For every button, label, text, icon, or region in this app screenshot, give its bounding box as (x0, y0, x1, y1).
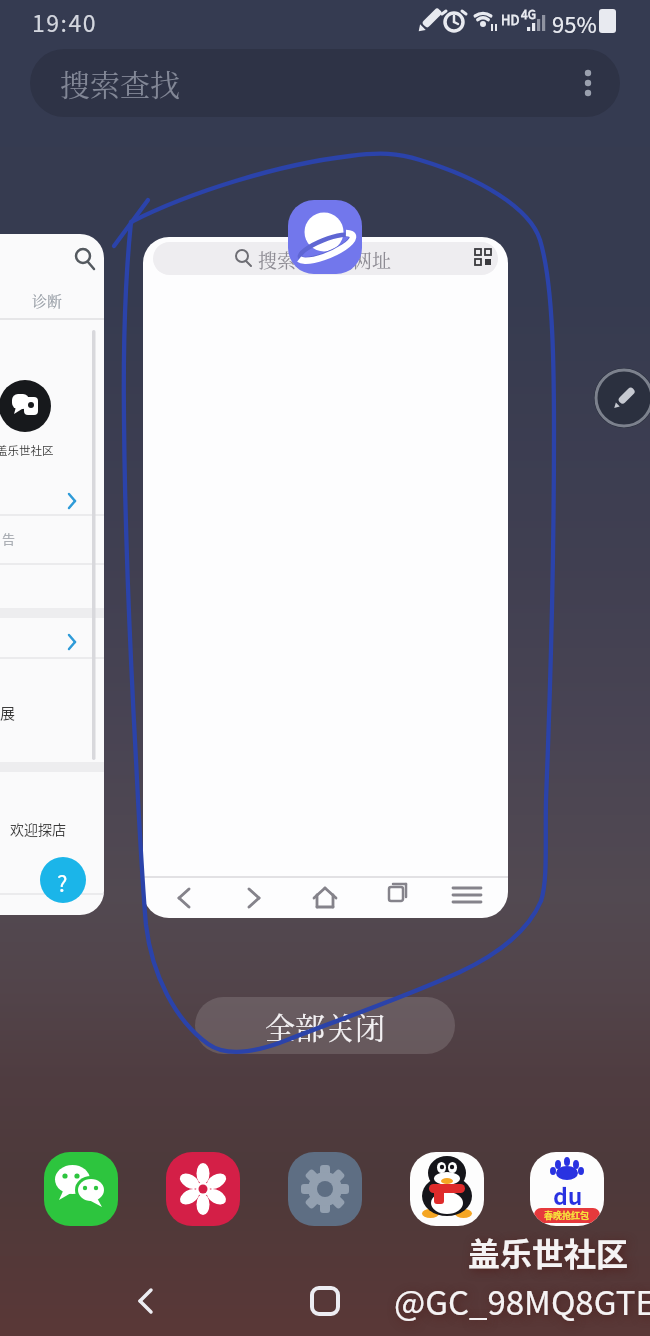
staticText: 诊断 (32, 290, 63, 312)
button[interactable] (166, 1152, 240, 1226)
staticText: 欢迎探店 (10, 819, 66, 839)
button[interactable]: 全部关闭 (195, 997, 455, 1054)
button[interactable] (594, 368, 650, 428)
button[interactable]: 搜索或输入网址 (143, 237, 508, 918)
staticText: 春晚抢红包 (544, 1209, 590, 1222)
staticText: ? (57, 866, 68, 898)
button[interactable] (410, 1152, 484, 1226)
staticText: 盖乐世社区 (468, 1229, 629, 1275)
staticText: 4G (521, 5, 536, 22)
staticText: du (553, 1178, 583, 1211)
staticText: 19:40 (32, 5, 97, 38)
staticText: 搜索或输入网址 (258, 246, 392, 273)
staticText: 告 (2, 529, 16, 548)
staticText: @GC_98MQ8GTE (394, 1277, 650, 1325)
staticText: 搜索查找 (60, 61, 180, 104)
button[interactable] (44, 1152, 118, 1226)
staticText: 全部关闭 (265, 1004, 385, 1047)
button[interactable] (288, 1152, 362, 1226)
staticText: HD (501, 10, 520, 29)
button[interactable]: 诊断 (0, 234, 104, 915)
button[interactable] (120, 1278, 170, 1324)
staticText: 95% (552, 7, 597, 39)
button[interactable]: du (530, 1152, 604, 1226)
button[interactable] (300, 1278, 350, 1324)
staticText: 盖乐世社区 (0, 442, 54, 459)
staticText: 展 (0, 702, 16, 724)
button[interactable]: 搜索查找 (30, 49, 620, 117)
